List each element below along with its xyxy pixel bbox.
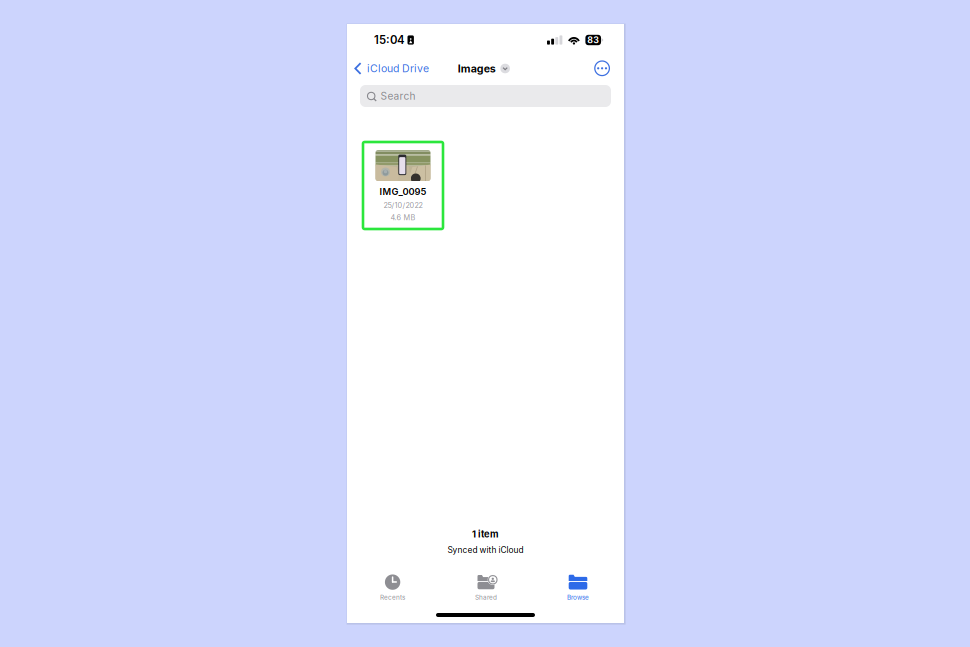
staticText: Recents	[380, 594, 405, 601]
button[interactable]: Shared	[443, 572, 529, 604]
button[interactable]: Search	[360, 85, 611, 107]
button[interactable]: Recents	[350, 572, 436, 604]
staticText: 83	[587, 35, 599, 45]
staticText: 15:04	[374, 33, 405, 47]
staticText: Browse	[567, 594, 589, 601]
staticText: iCloud Drive	[367, 62, 429, 75]
staticText: Images	[458, 62, 496, 75]
button[interactable]: Browse	[535, 572, 621, 604]
button[interactable]: iCloud Drive	[351, 57, 432, 80]
staticText: Synced with iCloud	[447, 545, 523, 555]
staticText: 1 item	[472, 528, 499, 540]
staticText: 25/10/2022	[383, 201, 422, 210]
button[interactable]: IMG_0095	[363, 142, 443, 229]
button[interactable]: More	[591, 57, 613, 79]
staticText: Shared	[475, 594, 497, 601]
staticText: 4.6 MB	[390, 213, 415, 222]
staticText: Search	[380, 90, 415, 102]
staticText: IMG_0095	[379, 186, 426, 197]
